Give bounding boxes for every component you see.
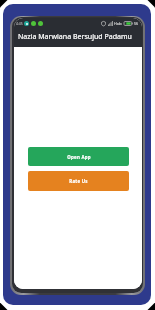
staticText: Rate Us [69,178,88,184]
other: Notification [24,21,29,26]
other: Battery [124,21,133,26]
button[interactable]: Nazia Marwiana Bersujud Padamu [14,28,142,47]
button[interactable]: Open App [28,147,129,166]
other: Secure [101,21,106,26]
staticText: Nazia Marwiana Bersujud Padamu [18,31,132,41]
staticText: 4:45 [16,21,23,26]
staticText: Open App [67,154,91,160]
staticText: 56 [134,21,139,26]
staticText: Halo [114,21,122,26]
other: Signal strength [108,21,113,26]
button[interactable]: Rate Us [28,171,129,191]
